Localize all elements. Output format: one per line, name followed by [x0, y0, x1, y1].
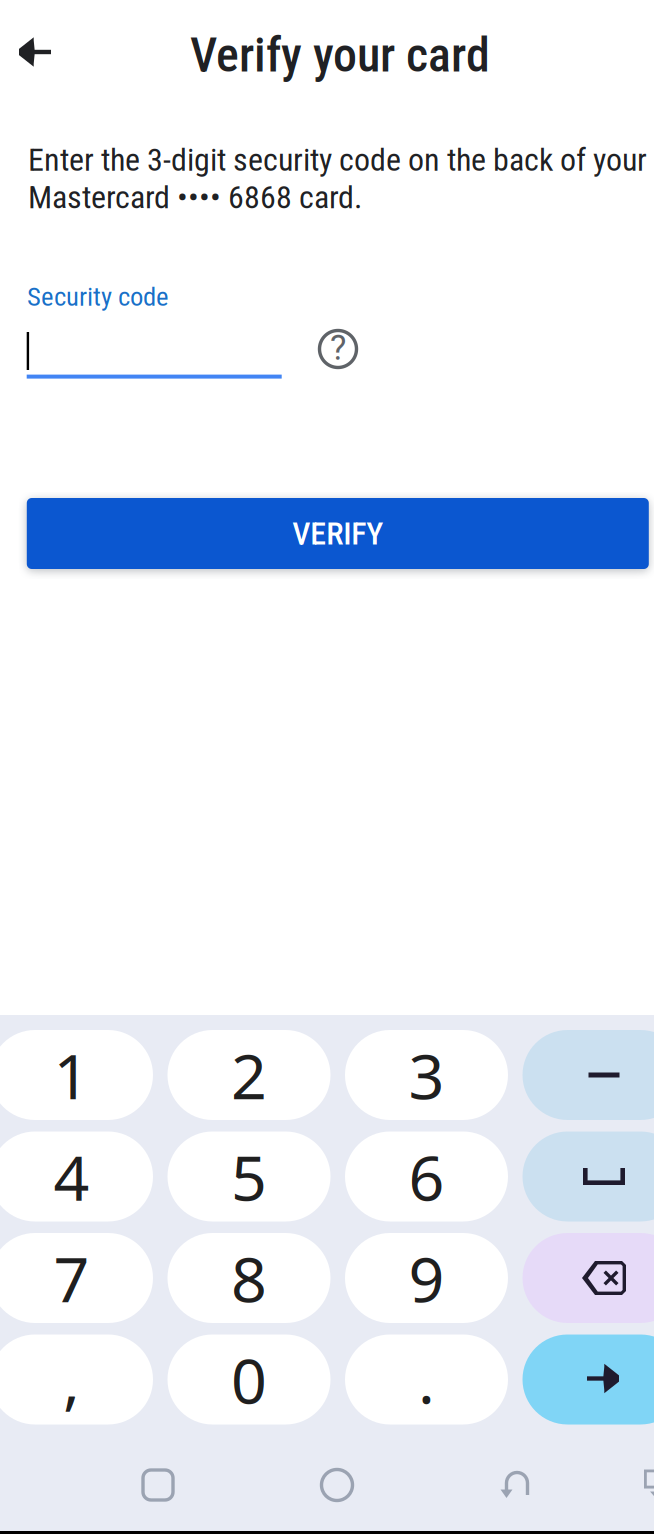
button[interactable]: Home — [304, 1456, 370, 1514]
staticText: , — [63, 1337, 80, 1422]
staticText: 3 — [408, 1032, 444, 1118]
staticText: 4 — [53, 1134, 89, 1219]
button[interactable]: Hide keyboard — [624, 1456, 654, 1514]
staticText: 8 — [231, 1235, 267, 1321]
button[interactable]: 5 — [167, 1131, 330, 1221]
button[interactable]: . — [345, 1334, 508, 1424]
button[interactable]: Space — [522, 1131, 654, 1221]
button[interactable]: VERIFY — [27, 498, 649, 569]
button[interactable]: Back — [484, 1456, 550, 1514]
staticText: Enter the 3-digit security code on the b… — [28, 141, 647, 216]
button[interactable]: 3 — [345, 1030, 508, 1120]
staticText: 9 — [408, 1235, 444, 1321]
staticText: 0 — [231, 1337, 267, 1422]
button[interactable]: What is a security code? — [317, 328, 358, 369]
staticText: 1 — [53, 1032, 89, 1118]
staticText: 5 — [231, 1134, 267, 1219]
staticText: 7 — [53, 1235, 89, 1321]
button[interactable]: 1 — [0, 1030, 153, 1120]
staticText: Security code — [27, 281, 169, 312]
staticText: 6 — [408, 1134, 444, 1219]
staticText: VERIFY — [292, 515, 383, 552]
button[interactable]: Recents — [125, 1456, 191, 1514]
button[interactable]: 0 — [167, 1334, 330, 1424]
button[interactable]: 7 — [0, 1233, 153, 1323]
staticText: ? — [330, 328, 346, 368]
staticText: Verify your card — [190, 27, 490, 83]
staticText: . — [418, 1337, 435, 1422]
button[interactable]: 9 — [345, 1233, 508, 1323]
button[interactable]: 6 — [345, 1131, 508, 1221]
staticText: 2 — [231, 1032, 267, 1118]
button[interactable]: 2 — [167, 1030, 330, 1120]
button[interactable]: Back — [0, 20, 70, 84]
button[interactable]: , — [0, 1334, 153, 1424]
button[interactable]: Delete — [522, 1233, 654, 1323]
button[interactable]: 4 — [0, 1131, 153, 1221]
button[interactable]: 8 — [167, 1233, 330, 1323]
button[interactable]: Enter — [522, 1334, 654, 1424]
button[interactable]: Minus — [522, 1030, 654, 1120]
